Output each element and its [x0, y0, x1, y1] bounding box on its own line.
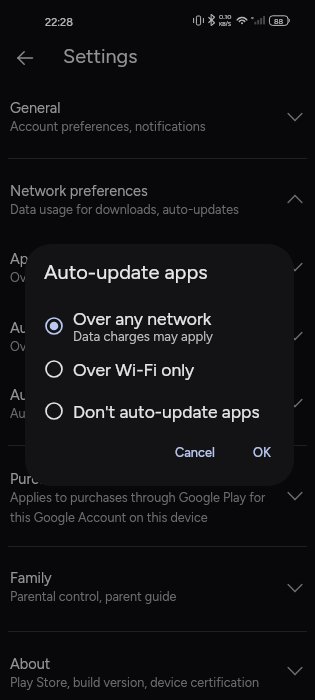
button[interactable]: Purchases — [0, 462, 315, 546]
button[interactable]: Auto-update apps — [0, 311, 315, 378]
staticText: Over any network — [10, 339, 110, 354]
button[interactable]: About — [0, 647, 315, 700]
staticText: 0.10 — [219, 13, 232, 21]
staticText: Parental control, parent guide — [10, 589, 177, 604]
staticText: 88 — [268, 17, 289, 26]
staticText: Cancel — [175, 445, 215, 460]
staticText: Data usage for downloads, auto-updates — [10, 202, 239, 217]
button[interactable]: App download preference — [0, 242, 315, 311]
staticText: App download preference — [10, 250, 180, 267]
button[interactable]: OK — [244, 440, 280, 465]
staticText: Auto-play videos — [10, 386, 121, 403]
staticText: KB/S — [219, 21, 232, 28]
button[interactable]: Don't auto-update apps — [25, 390, 294, 432]
staticText: 22:28 — [45, 16, 73, 29]
staticText: About — [10, 655, 51, 672]
button[interactable]: Cancel — [166, 440, 224, 465]
staticText: Settings — [63, 44, 138, 68]
staticText: Network preferences — [10, 182, 148, 199]
button[interactable]: Over any network — [25, 305, 294, 347]
staticText: Account preferences, notifications — [10, 119, 206, 134]
staticText: General — [10, 99, 61, 116]
staticText: Over any network — [73, 308, 212, 329]
staticText: OK — [253, 445, 271, 460]
button[interactable]: Auto-play videos — [0, 378, 315, 445]
staticText: Don't auto-update apps — [73, 401, 260, 422]
button[interactable]: Family — [0, 561, 315, 631]
staticText: Play Store, build version, device certif… — [10, 675, 259, 690]
staticText: Data charges may apply — [73, 329, 213, 345]
staticText: Family — [10, 569, 52, 586]
staticText: Auto-update apps — [44, 260, 208, 284]
button[interactable]: Back — [12, 45, 38, 71]
staticText: Auto-play videos — [10, 406, 107, 421]
staticText: Applies to purchases through Google Play… — [10, 490, 277, 525]
staticText: Over Wi-Fi only — [73, 359, 195, 380]
staticText: Auto-update apps — [10, 319, 129, 336]
staticText: Over any network — [10, 270, 110, 285]
button[interactable]: General — [0, 91, 315, 158]
button[interactable]: Network preferences — [0, 174, 315, 242]
button[interactable]: Over Wi-Fi only — [25, 348, 294, 390]
staticText: Purchases — [10, 470, 77, 487]
